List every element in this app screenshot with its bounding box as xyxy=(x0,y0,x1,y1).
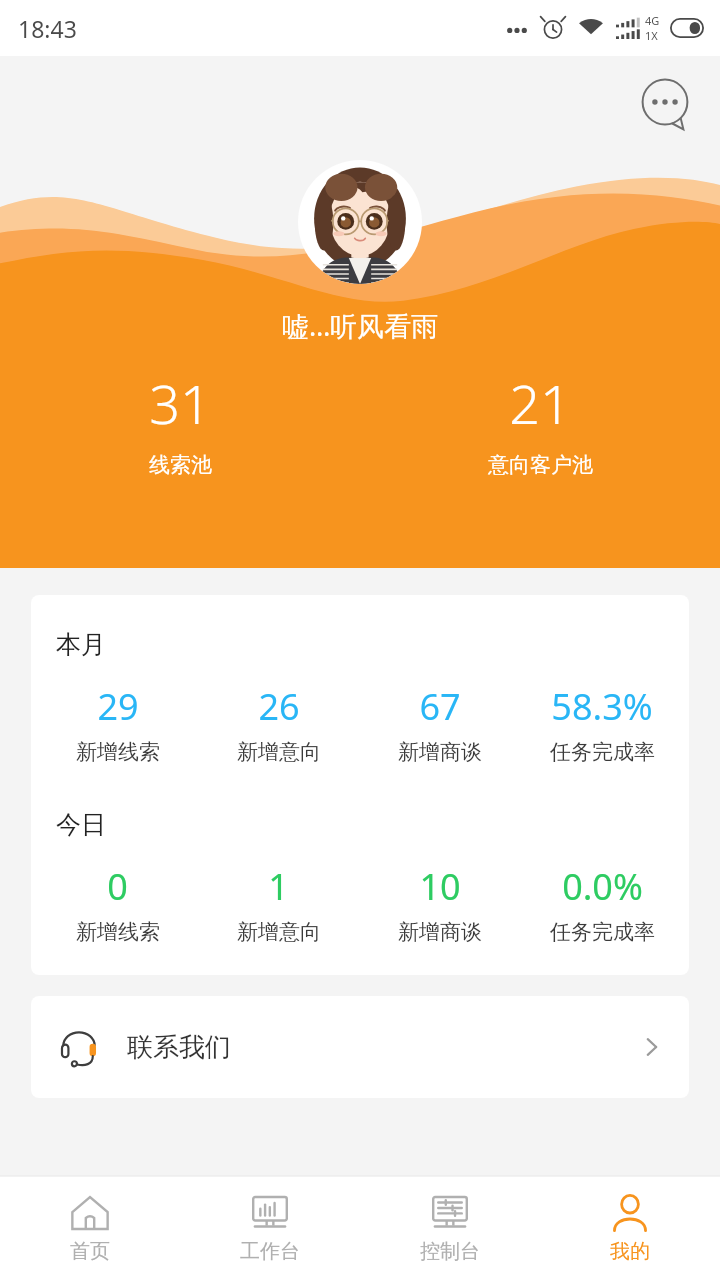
button[interactable]: 26 xyxy=(198,682,359,765)
button[interactable]: 0 xyxy=(37,862,198,945)
staticText: 0 xyxy=(107,862,128,911)
staticText: 线索池 xyxy=(149,452,212,478)
button[interactable]: 1 xyxy=(198,862,359,945)
button[interactable]: 58.3% xyxy=(521,682,683,765)
staticText: 意向客户池 xyxy=(488,452,593,478)
staticText: 工作台 xyxy=(240,1239,300,1264)
staticText: 首页 xyxy=(70,1239,110,1264)
staticText: 67 xyxy=(419,682,461,731)
staticText: 1 xyxy=(268,862,289,911)
staticText: 58.3% xyxy=(551,682,653,731)
button[interactable]: 控制台 xyxy=(360,1176,540,1280)
staticText: 本月 xyxy=(56,629,106,660)
staticText: 新增线索 xyxy=(76,739,160,765)
staticText: 0.0% xyxy=(562,862,643,911)
staticText: 联系我们 xyxy=(127,1031,231,1064)
staticText: 21 xyxy=(509,366,571,440)
button[interactable]: 联系我们 xyxy=(31,996,689,1098)
staticText: 29 xyxy=(97,682,139,731)
staticText: 新增意向 xyxy=(237,919,321,945)
button[interactable]: 67 xyxy=(359,682,521,765)
button[interactable]: 工作台 xyxy=(180,1176,360,1280)
staticText: 26 xyxy=(258,682,300,731)
staticText: 新增商谈 xyxy=(398,919,482,945)
staticText: 新增商谈 xyxy=(398,739,482,765)
staticText: 31 xyxy=(149,366,211,440)
button[interactable]: 31 xyxy=(0,366,360,478)
staticText: 18:43 xyxy=(18,13,77,44)
button[interactable]: Profile photo xyxy=(298,160,422,284)
staticText: 4G xyxy=(645,13,660,28)
staticText: 1X xyxy=(645,28,658,43)
button[interactable]: 21 xyxy=(360,366,720,478)
staticText: 嘘…听风看雨 xyxy=(282,307,439,344)
button[interactable]: 10 xyxy=(359,862,521,945)
staticText: 我的 xyxy=(610,1239,650,1264)
staticText: 今日 xyxy=(56,809,106,840)
staticText: 任务完成率 xyxy=(550,919,655,945)
staticText: 任务完成率 xyxy=(550,739,655,765)
button[interactable]: Messages xyxy=(635,73,695,133)
button[interactable]: 首页 xyxy=(0,1176,180,1280)
staticText: 新增线索 xyxy=(76,919,160,945)
button[interactable]: 0.0% xyxy=(521,862,683,945)
button[interactable]: 29 xyxy=(37,682,198,765)
staticText: 新增意向 xyxy=(237,739,321,765)
staticText: 控制台 xyxy=(420,1239,480,1264)
button[interactable]: 我的 xyxy=(540,1176,720,1280)
staticText: 10 xyxy=(419,862,461,911)
